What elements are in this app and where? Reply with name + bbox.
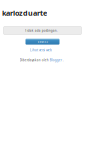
staticText: Diberdayakan oleh: [20, 58, 49, 62]
staticText: Blogger: [50, 58, 62, 62]
staticText: Lihat versi web: [30, 48, 52, 52]
staticText: karlozduarte: [2, 8, 47, 18]
button[interactable]: Blogger: [50, 58, 62, 62]
staticText: Tidak ada postingan.: [25, 28, 58, 32]
staticText: Beranda: [37, 40, 47, 43]
staticText: .: [63, 58, 64, 62]
button[interactable]: Lihat versi web: [30, 48, 52, 52]
button[interactable]: Beranda: [25, 39, 59, 45]
